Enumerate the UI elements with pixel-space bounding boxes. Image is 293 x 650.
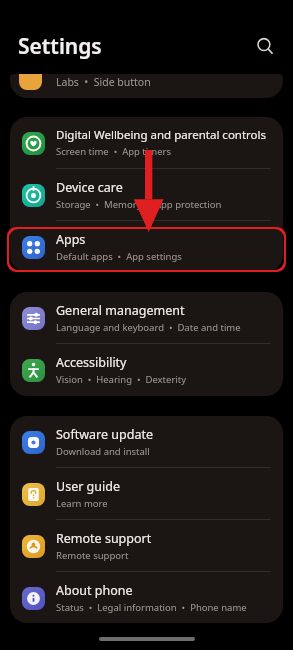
staticText: Language and keyboard • Date and time: [56, 321, 241, 334]
button[interactable]: Accessibility: [10, 344, 283, 395]
staticText: Settings: [18, 32, 102, 61]
button[interactable]: Labs • Side button: [10, 74, 283, 98]
staticText: Storage • Memory • App protection: [56, 198, 222, 211]
button[interactable]: General management: [10, 292, 283, 343]
staticText: Apps: [56, 231, 86, 248]
button[interactable]: Device care: [10, 169, 283, 220]
staticText: Accessibility: [56, 354, 127, 371]
staticText: Status • Legal information • Phone name: [56, 601, 247, 614]
staticText: Remote support: [56, 549, 129, 562]
staticText: User guide: [56, 478, 120, 495]
staticText: Screen time • App timers: [56, 145, 171, 158]
button[interactable]: User guide: [10, 468, 283, 519]
staticText: Digital Wellbeing and parental controls: [56, 127, 267, 143]
staticText: Download and install: [56, 445, 150, 458]
button[interactable]: Remote support: [10, 520, 283, 571]
button[interactable]: Software update: [10, 416, 283, 467]
staticText: Vision • Hearing • Dexterity: [56, 373, 187, 386]
staticText: Learn more: [56, 497, 108, 510]
staticText: Software update: [56, 426, 153, 443]
staticText: Device care: [56, 179, 123, 196]
staticText: Remote support: [56, 530, 152, 547]
button[interactable]: Apps: [10, 221, 283, 272]
staticText: Labs • Side button: [56, 75, 151, 89]
staticText: About phone: [56, 582, 133, 599]
button[interactable]: About phone: [10, 572, 283, 623]
staticText: Default apps • App settings: [56, 250, 182, 263]
button[interactable]: Search: [247, 28, 283, 64]
staticText: General management: [56, 302, 185, 319]
button[interactable]: Digital Wellbeing and parental controls: [10, 117, 283, 168]
